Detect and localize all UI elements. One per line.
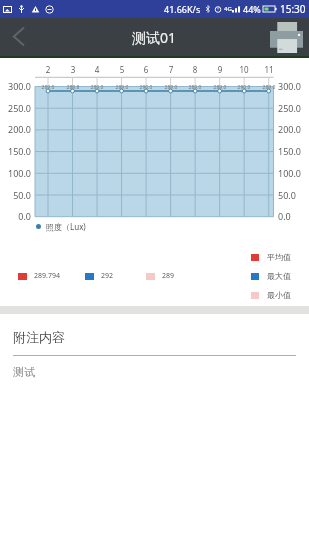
staticText: 6 bbox=[136, 64, 156, 75]
staticText: 289.0 bbox=[183, 84, 207, 91]
staticText: 最大值 bbox=[267, 271, 291, 281]
staticText: 290.0 bbox=[134, 84, 158, 91]
staticText: 0.0 bbox=[0, 210, 31, 222]
staticText: 289.0 bbox=[36, 84, 60, 91]
staticText: 289 bbox=[162, 271, 175, 281]
button[interactable]: Back bbox=[0, 18, 38, 56]
staticText: 7 bbox=[161, 64, 181, 75]
staticText: 289.8 bbox=[61, 84, 85, 91]
staticText: 8 bbox=[185, 64, 205, 75]
staticText: 2 bbox=[38, 64, 58, 75]
staticText: 50.0 bbox=[278, 189, 296, 201]
staticText: 200.0 bbox=[0, 123, 31, 135]
staticText: 测试 bbox=[13, 365, 35, 379]
staticText: 289.794 bbox=[34, 271, 60, 281]
staticText: 290.0 bbox=[232, 84, 256, 91]
staticText: 附注内容 bbox=[13, 329, 65, 345]
staticText: 10 bbox=[234, 64, 254, 75]
staticText: 289.0 bbox=[208, 84, 232, 91]
staticText: 照度（Lux) bbox=[46, 221, 86, 232]
staticText: 0.0 bbox=[278, 210, 291, 222]
staticText: 15:30 bbox=[280, 2, 306, 16]
staticText: 50.0 bbox=[0, 189, 31, 201]
button[interactable]: Print bbox=[263, 18, 309, 56]
staticText: 4G bbox=[224, 5, 232, 13]
staticText: 100.0 bbox=[0, 167, 31, 179]
staticText: 11 bbox=[259, 64, 279, 75]
staticText: 44% bbox=[243, 3, 261, 15]
staticText: 3 bbox=[63, 64, 83, 75]
staticText: 150.0 bbox=[0, 145, 31, 157]
staticText: 289.0 bbox=[85, 84, 109, 91]
staticText: 289.0 bbox=[159, 84, 183, 91]
staticText: 5 bbox=[112, 64, 132, 75]
staticText: 292 bbox=[101, 271, 114, 281]
staticText: 9 bbox=[210, 64, 230, 75]
staticText: 250.0 bbox=[0, 102, 31, 114]
staticText: 150.0 bbox=[278, 145, 302, 157]
staticText: 300.0 bbox=[0, 80, 31, 92]
staticText: 300.0 bbox=[278, 80, 302, 92]
staticText: 200.0 bbox=[278, 123, 302, 135]
staticText: 最小值 bbox=[267, 290, 291, 300]
staticText: 4 bbox=[87, 64, 107, 75]
staticText: 289.0 bbox=[110, 84, 134, 91]
staticText: 100.0 bbox=[278, 167, 302, 179]
staticText: 测试01 bbox=[132, 28, 177, 47]
staticText: 289.0 bbox=[257, 84, 281, 91]
staticText: 250.0 bbox=[278, 102, 302, 114]
staticText: 41.66K/s bbox=[164, 3, 201, 15]
staticText: 平均值 bbox=[267, 252, 291, 262]
